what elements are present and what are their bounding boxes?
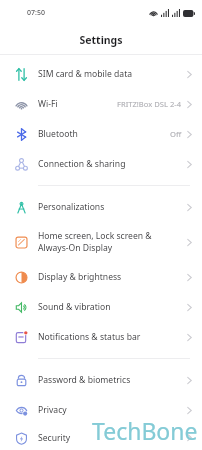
staticText: Personalizations <box>38 201 105 213</box>
button[interactable]: SIM card & mobile data <box>0 59 202 89</box>
staticText: Always-On Display <box>38 242 113 254</box>
staticText: TechBone <box>92 415 198 446</box>
button[interactable]: Connection & sharing <box>0 149 202 179</box>
staticText: Connection & sharing <box>38 158 126 170</box>
button[interactable]: Security <box>0 425 202 450</box>
button[interactable]: Bluetooth <box>0 119 202 149</box>
staticText: Off <box>170 129 182 139</box>
staticText: Wi-Fi <box>38 98 58 110</box>
staticText: FRITZ!Box DSL 2-4 <box>117 99 182 109</box>
staticText: Security <box>38 432 71 444</box>
staticText: Password & biometrics <box>38 374 131 386</box>
staticText: Privacy <box>38 404 67 416</box>
button[interactable]: Notifications & status bar <box>0 322 202 352</box>
button[interactable]: Home screen, Lock screen & <box>0 222 202 262</box>
staticText: Notifications & status bar <box>38 331 141 343</box>
button[interactable]: Privacy <box>0 395 202 425</box>
button[interactable]: Display & brightness <box>0 262 202 292</box>
button[interactable]: Password & biometrics <box>0 365 202 395</box>
button[interactable]: Wi-Fi <box>0 89 202 119</box>
staticText: Home screen, Lock screen & <box>38 230 152 242</box>
staticText: Display & brightness <box>38 271 122 283</box>
staticText: Sound & vibration <box>38 301 111 313</box>
staticText: 07:50 <box>27 8 45 18</box>
staticText: SIM card & mobile data <box>38 68 133 80</box>
staticText: Settings <box>79 33 123 47</box>
staticText: Bluetooth <box>38 128 78 140</box>
button[interactable]: Sound & vibration <box>0 292 202 322</box>
button[interactable]: Personalizations <box>0 192 202 222</box>
